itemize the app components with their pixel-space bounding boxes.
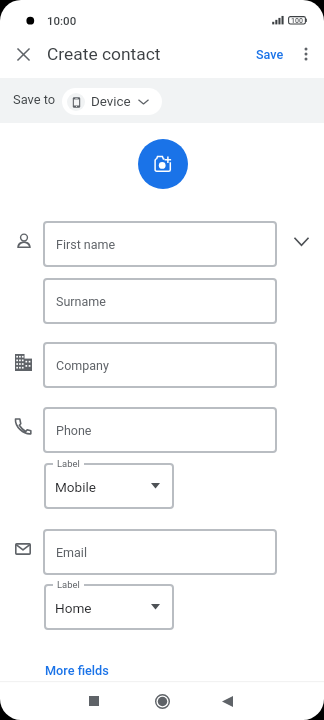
button[interactable]: Close bbox=[5, 36, 41, 72]
button[interactable] bbox=[44, 463, 174, 509]
staticText: Surname bbox=[56, 294, 106, 309]
button[interactable]: Surname bbox=[43, 278, 277, 324]
staticText: Home bbox=[55, 600, 92, 616]
staticText: Email bbox=[56, 545, 87, 560]
staticText: Save bbox=[256, 47, 284, 62]
staticText: Create contact bbox=[47, 44, 161, 64]
staticText: 100 bbox=[291, 17, 303, 25]
staticText: Mobile bbox=[55, 479, 97, 495]
staticText: First name bbox=[56, 237, 116, 252]
button[interactable]: Expand name fields bbox=[286, 224, 316, 254]
button[interactable]: Back bbox=[207, 682, 247, 720]
staticText: More fields bbox=[45, 663, 109, 678]
button[interactable]: Home bbox=[142, 682, 182, 720]
button[interactable] bbox=[44, 584, 174, 630]
staticText: Company bbox=[56, 358, 109, 373]
button[interactable]: Recent apps bbox=[74, 682, 114, 720]
button[interactable]: Save bbox=[250, 42, 290, 67]
staticText: Phone bbox=[56, 423, 92, 438]
button[interactable]: Add photo bbox=[138, 139, 188, 189]
button[interactable]: More options bbox=[288, 36, 324, 72]
button[interactable]: Company bbox=[43, 342, 277, 388]
staticText: Label bbox=[57, 458, 80, 469]
button[interactable]: First name bbox=[43, 221, 277, 267]
staticText: Label bbox=[57, 579, 80, 590]
staticText: Device bbox=[91, 94, 131, 110]
button[interactable]: More fields bbox=[39, 658, 115, 683]
staticText: 10:00 bbox=[47, 14, 77, 27]
button[interactable]: Device bbox=[62, 88, 162, 115]
button[interactable]: Email bbox=[43, 529, 277, 575]
button[interactable]: Phone bbox=[43, 407, 277, 453]
staticText: Save to bbox=[13, 92, 56, 107]
